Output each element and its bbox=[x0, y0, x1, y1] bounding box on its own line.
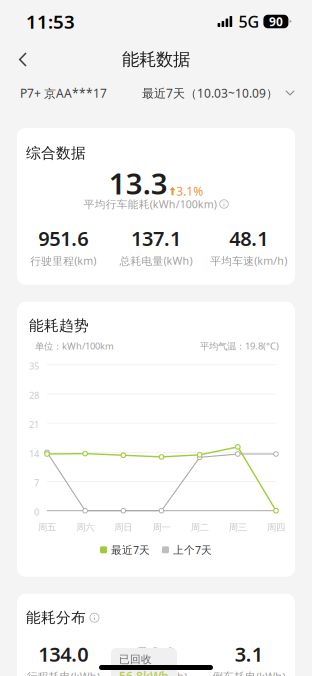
staticText: 28 bbox=[29, 389, 39, 401]
staticText: 0 bbox=[34, 506, 39, 518]
staticText: 最近7天 bbox=[111, 543, 150, 557]
staticText: 平均行车能耗(kWh/100km) bbox=[84, 197, 217, 211]
staticText: 上个7天 bbox=[173, 543, 212, 557]
staticText: 行驶里程(km) bbox=[30, 254, 96, 268]
staticText: 综合数据 bbox=[26, 144, 86, 162]
staticText: 最近7天（10.03~10.09） bbox=[142, 85, 278, 101]
staticText: 5G bbox=[238, 11, 259, 32]
staticText: 11:53 bbox=[26, 9, 75, 34]
staticText: 951.6 bbox=[38, 225, 88, 252]
staticText: 35 bbox=[29, 360, 39, 372]
staticText: 3.1 bbox=[235, 641, 263, 667]
staticText: 56.8 bbox=[136, 641, 175, 667]
staticText: 平均车速(km/h) bbox=[210, 254, 287, 268]
staticText: 行程耗电(kWh) bbox=[27, 669, 100, 676]
staticText: 周二 bbox=[191, 522, 209, 533]
staticText: 14 bbox=[29, 447, 39, 460]
staticText: 13.3 bbox=[109, 163, 168, 202]
staticText: 48.1 bbox=[229, 225, 268, 252]
staticText: 单位：kWh/100km bbox=[35, 340, 114, 352]
staticText: 周三 bbox=[229, 522, 247, 533]
staticText: 周一 bbox=[152, 522, 170, 533]
staticText: 56.8kWh bbox=[119, 668, 169, 676]
staticText: 已回收 bbox=[119, 653, 152, 666]
staticText: 能耗分布 bbox=[26, 609, 86, 627]
staticText: 137.1 bbox=[131, 225, 181, 252]
staticText: 134.0 bbox=[38, 641, 88, 667]
staticText: 7 bbox=[34, 476, 39, 489]
staticText: 周四 bbox=[267, 522, 285, 533]
staticText: 总耗电量(kWh) bbox=[119, 254, 192, 268]
staticText: 周五 bbox=[38, 522, 56, 533]
staticText: 3.1% bbox=[176, 183, 203, 199]
staticText: 周六 bbox=[76, 522, 94, 533]
staticText: 已回收(kWh) bbox=[125, 669, 187, 676]
staticText: P7+ 京AA***17 bbox=[20, 85, 107, 101]
staticText: 周日 bbox=[114, 522, 132, 533]
staticText: 能耗趋势 bbox=[29, 317, 89, 335]
staticText: 平均气温：19.8(°C) bbox=[200, 340, 279, 352]
button[interactable]: 返回 bbox=[6, 43, 40, 75]
staticText: 90 bbox=[269, 13, 283, 29]
button[interactable]: 最近7天（10.03~10.09） bbox=[142, 80, 295, 106]
staticText: 倒车耗电(kWh) bbox=[212, 669, 285, 676]
staticText: 能耗数据 bbox=[122, 49, 190, 70]
staticText: 21 bbox=[29, 418, 39, 430]
